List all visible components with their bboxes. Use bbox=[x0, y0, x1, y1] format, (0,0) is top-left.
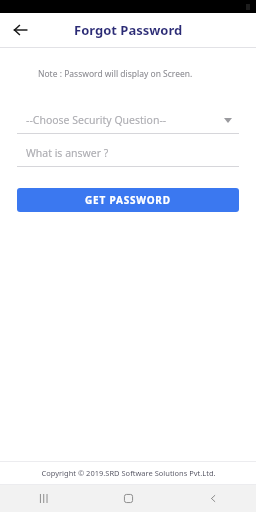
staticText: Forgot Password bbox=[74, 21, 183, 39]
button[interactable]: --Choose Security Question-- bbox=[17, 109, 239, 134]
button[interactable]: GET PASSWORD bbox=[17, 188, 239, 212]
button[interactable]: What is answer ? bbox=[17, 142, 239, 167]
staticText: --Choose Security Question-- bbox=[26, 113, 223, 127]
button[interactable]: Recents bbox=[0, 485, 86, 512]
button[interactable]: Back bbox=[171, 485, 256, 512]
staticText: Copyright © 2019.SRD Software Solutions … bbox=[41, 468, 216, 478]
staticText: Note : Password will display on Screen. bbox=[38, 68, 193, 80]
staticText: What is answer ? bbox=[26, 146, 109, 160]
button[interactable]: Home bbox=[86, 485, 171, 512]
button[interactable]: Back bbox=[5, 15, 35, 45]
staticText: GET PASSWORD bbox=[85, 193, 171, 207]
